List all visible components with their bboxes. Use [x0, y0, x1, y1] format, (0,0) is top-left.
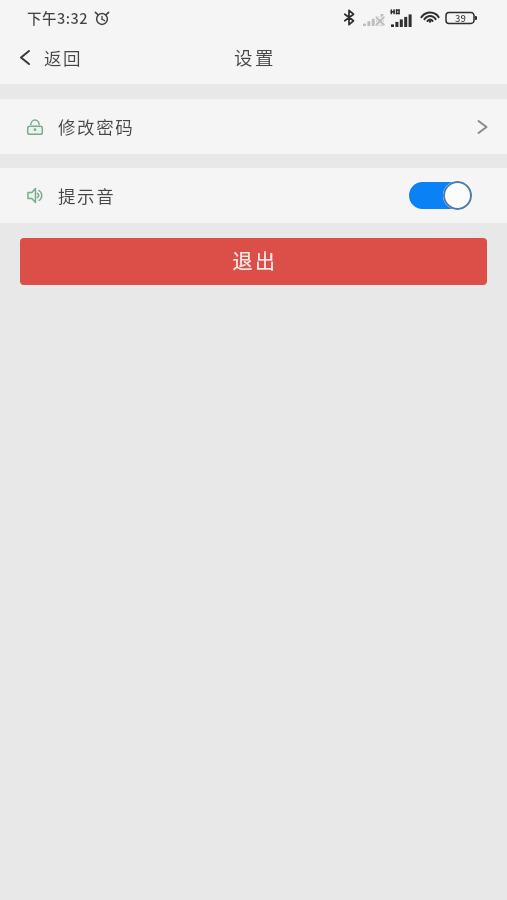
button[interactable]: 修改密码 [0, 99, 507, 154]
button[interactable]: 提示音开关 [373, 168, 507, 223]
staticText: 提示音 [58, 183, 116, 208]
button[interactable]: 提示音 [0, 168, 507, 223]
button[interactable]: 退出 [20, 238, 487, 285]
staticText: 39 [455, 11, 466, 25]
staticText: 下午3:32 [27, 7, 89, 28]
staticText: 退出 [232, 246, 278, 275]
staticText: 修改密码 [58, 114, 135, 139]
other: 进入 [457, 99, 507, 154]
staticText: 设置 [234, 44, 276, 71]
staticText: 返回 [44, 45, 83, 70]
button[interactable]: 返回 [0, 34, 99, 84]
